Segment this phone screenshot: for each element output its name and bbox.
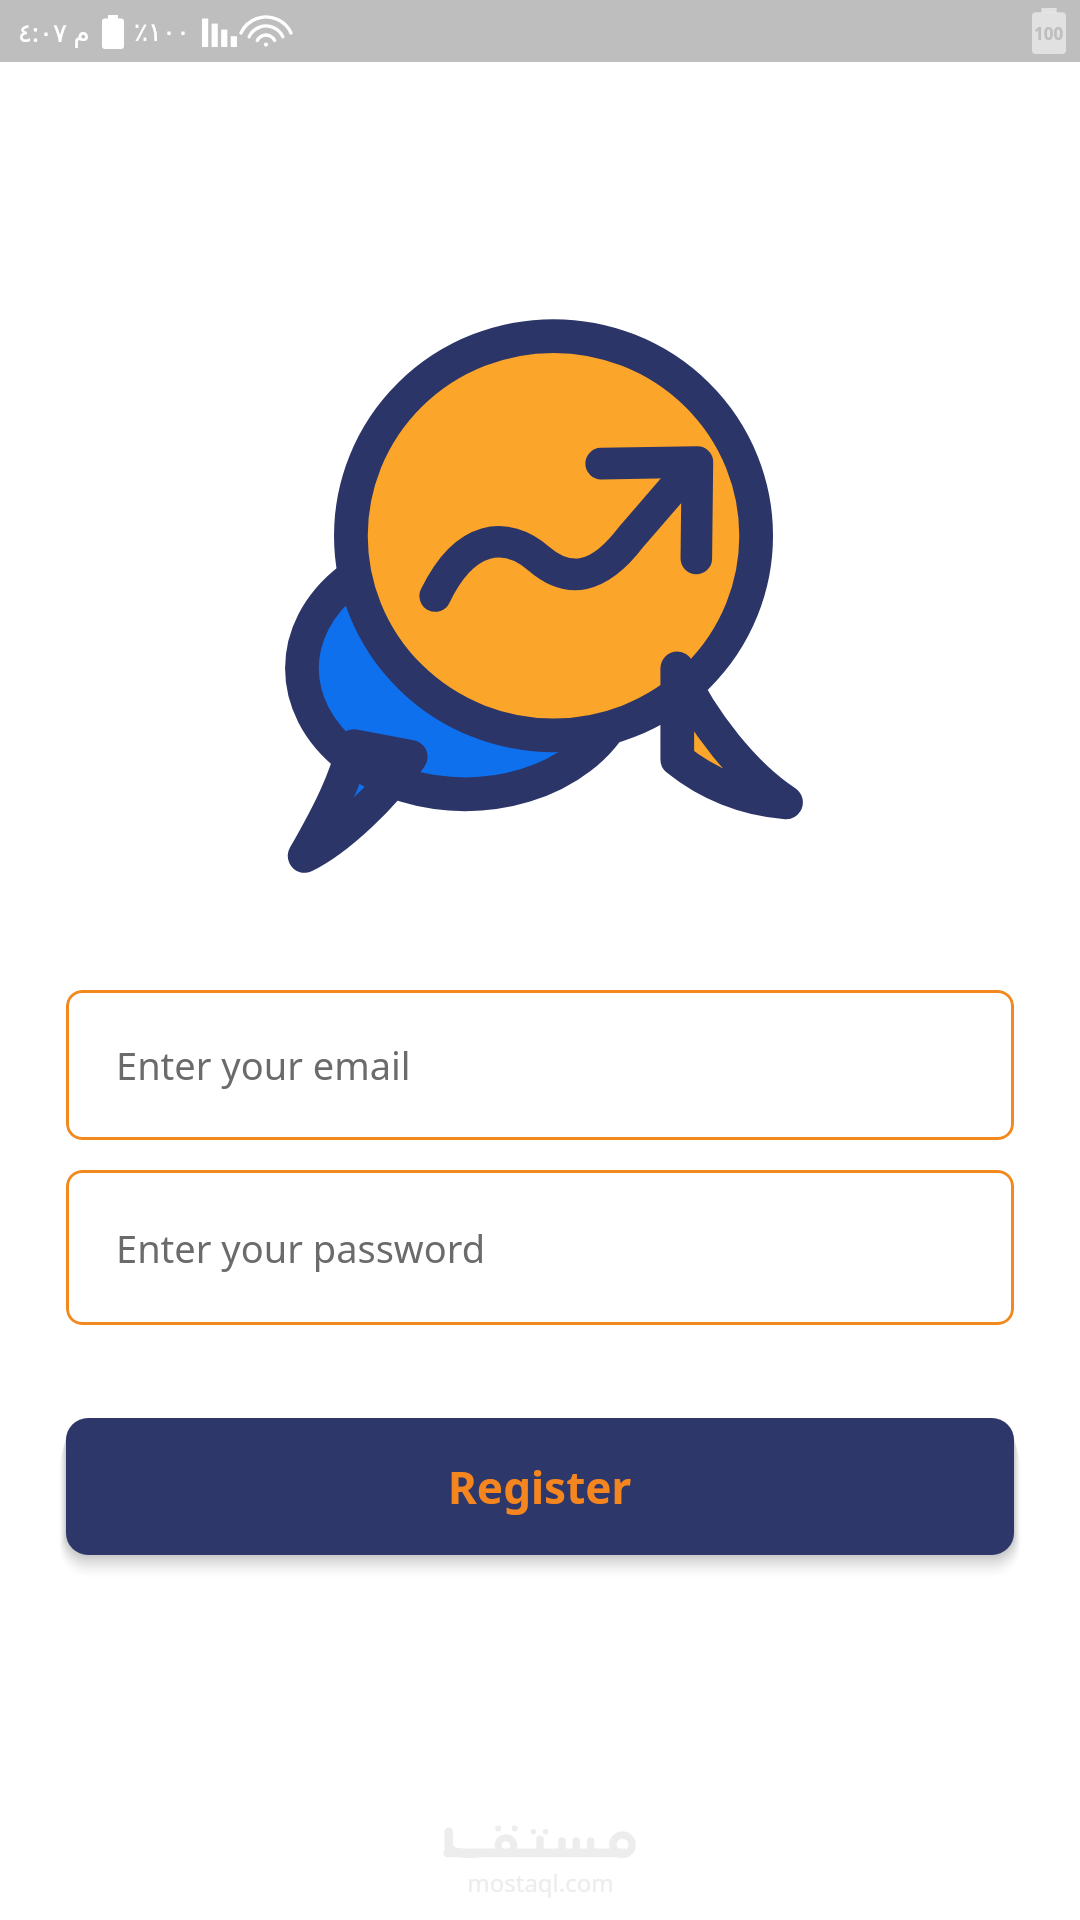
button[interactable]: Register	[66, 1418, 1014, 1555]
button[interactable]: Enter your email	[66, 990, 1014, 1140]
staticText: Register	[448, 1457, 632, 1517]
staticText: Enter your password	[116, 1222, 486, 1274]
staticText: م ٤:٠٧	[18, 14, 90, 49]
staticText: Enter your email	[116, 1039, 411, 1091]
staticText: mostaql.com	[467, 1866, 614, 1899]
staticText: ٪١٠٠	[134, 17, 190, 47]
staticText: 100	[1034, 22, 1064, 45]
button[interactable]: Enter your password	[66, 1170, 1014, 1325]
